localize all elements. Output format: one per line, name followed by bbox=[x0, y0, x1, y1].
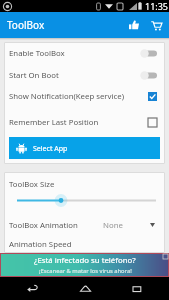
staticText: Remember Last Position bbox=[9, 117, 148, 128]
staticText: ¡Escanear & matar los virus ahora! bbox=[39, 267, 132, 275]
staticText: Select App bbox=[33, 144, 68, 154]
staticText: ¿Está infectado su teléfono? bbox=[34, 255, 136, 266]
staticText: Show Notification(Keep service) bbox=[9, 91, 148, 102]
staticText: ToolBox bbox=[7, 18, 45, 32]
button[interactable]: Show Notification(Keep service) bbox=[4, 86, 165, 107]
staticText: None bbox=[103, 220, 123, 231]
button[interactable]: Recent apps bbox=[117, 277, 157, 300]
staticText: Start On Boot bbox=[9, 70, 140, 81]
button[interactable]: Select App bbox=[9, 137, 160, 159]
button[interactable]: ToolBox size slider bbox=[4, 194, 165, 207]
button[interactable]: ¿Está infectado su teléfono? bbox=[1, 254, 168, 276]
button[interactable]: More apps bbox=[145, 12, 167, 38]
button[interactable]: Home bbox=[65, 277, 105, 300]
button[interactable]: Rate app bbox=[123, 12, 145, 38]
button[interactable]: Enable ToolBox bbox=[4, 42, 165, 65]
staticText: ToolBox Animation bbox=[9, 220, 103, 231]
staticText: Animation Speed bbox=[9, 239, 160, 250]
button[interactable]: Start On Boot bbox=[4, 65, 165, 86]
staticText: ToolBox Size bbox=[9, 179, 55, 190]
button[interactable]: Remember Last Position bbox=[4, 107, 165, 137]
staticText: 11:35 bbox=[145, 0, 169, 12]
button[interactable]: Animation Speed bbox=[4, 236, 165, 253]
button[interactable]: Back bbox=[12, 277, 52, 300]
button[interactable]: ToolBox Animation bbox=[4, 214, 165, 236]
staticText: Enable ToolBox bbox=[9, 48, 140, 59]
